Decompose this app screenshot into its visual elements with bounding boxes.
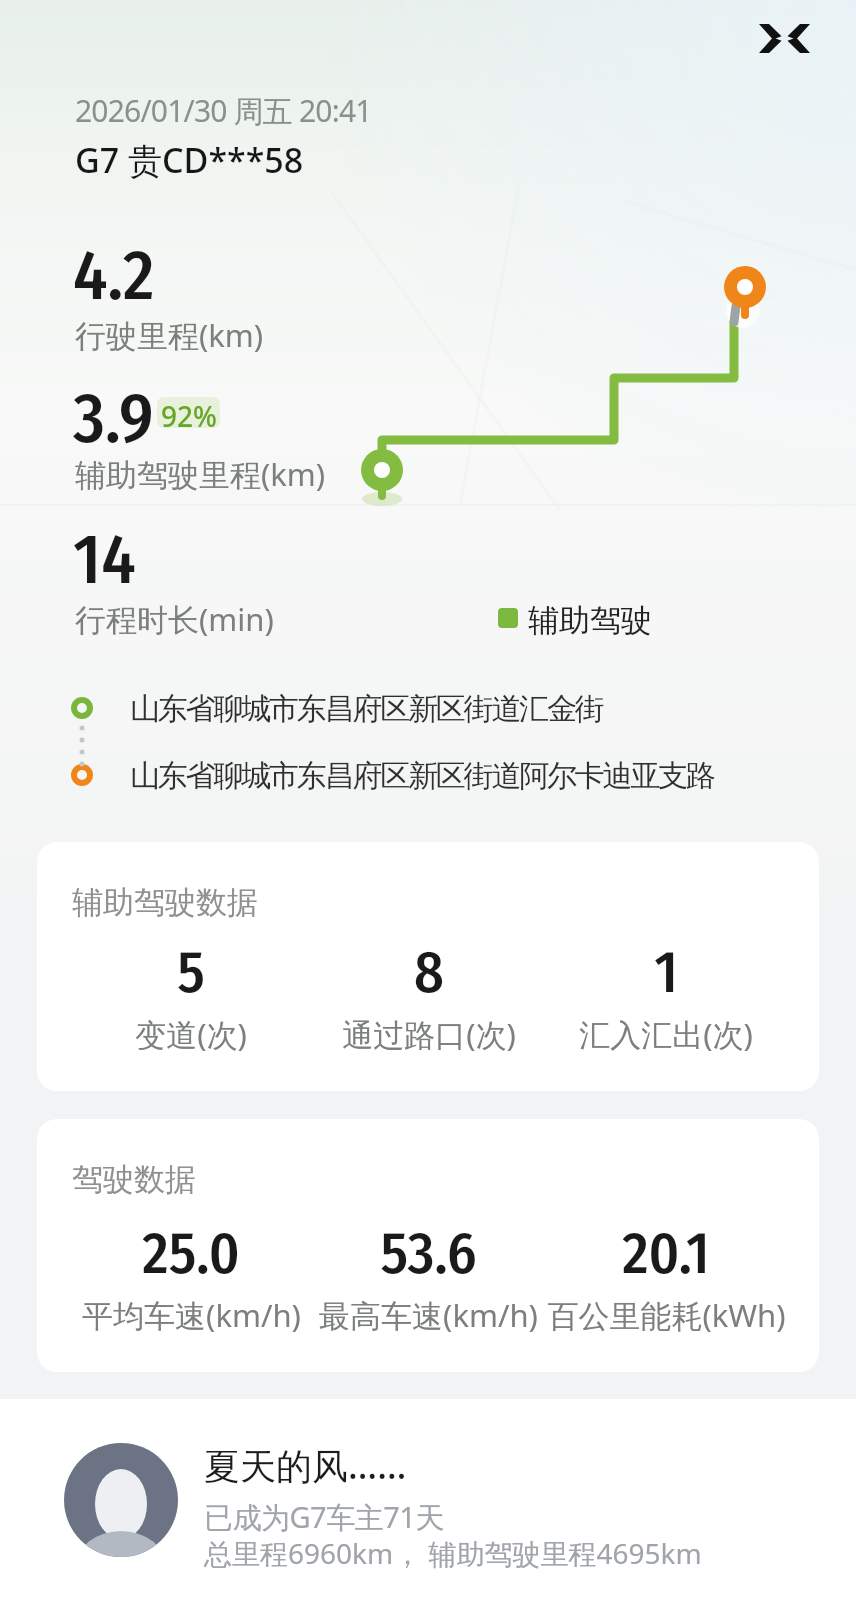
staticText: 百公里能耗(kWh) bbox=[547, 1294, 784, 1336]
staticText: 14 bbox=[73, 518, 136, 601]
staticText: 山东省聊城市东昌府区新区街道阿尔卡迪亚支路 bbox=[130, 757, 714, 795]
staticText: 最高车速(km/h) bbox=[319, 1294, 538, 1336]
staticText: 驾驶数据 bbox=[72, 1160, 196, 1199]
staticText: 25.0 bbox=[142, 1219, 240, 1289]
staticText: 行驶里程(km) bbox=[75, 314, 264, 356]
staticText: 辅助驾驶数据 bbox=[72, 883, 258, 922]
staticText: 辅助驾驶 bbox=[528, 601, 652, 640]
staticText: 2026/01/30 周五 20:41 bbox=[75, 90, 372, 131]
staticText: 山东省聊城市东昌府区新区街道汇金街 bbox=[130, 690, 603, 728]
button[interactable]: 驾驶数据 bbox=[37, 1119, 819, 1372]
staticText: 4.2 bbox=[73, 234, 155, 317]
staticText: 已成为G7车主71天 bbox=[204, 1497, 444, 1537]
staticText: 夏天的风…… bbox=[204, 1441, 407, 1490]
button[interactable]: 夏天的风…… bbox=[0, 1399, 856, 1614]
staticText: 平均车速(km/h) bbox=[82, 1294, 301, 1336]
staticText: 8 bbox=[414, 938, 444, 1008]
staticText: 通过路口(次) bbox=[342, 1013, 516, 1055]
staticText: 行程时长(min) bbox=[75, 598, 274, 640]
staticText: G7 贵CD***58 bbox=[75, 137, 304, 183]
staticText: 53.6 bbox=[380, 1219, 477, 1289]
staticText: 变道(次) bbox=[135, 1013, 247, 1055]
button[interactable]: 辅助驾驶数据 bbox=[37, 842, 819, 1091]
staticText: 1 bbox=[654, 938, 678, 1008]
staticText: 辅助驾驶里程(km) bbox=[75, 453, 326, 495]
staticText: 5 bbox=[177, 938, 205, 1008]
staticText: 总里程6960km， 辅助驾驶里程4695km bbox=[204, 1534, 702, 1572]
staticText: 汇入汇出(次) bbox=[579, 1013, 753, 1055]
staticText: 3.9 bbox=[73, 377, 154, 460]
staticText: 92% bbox=[161, 397, 217, 428]
staticText: 20.1 bbox=[622, 1219, 710, 1289]
button[interactable] bbox=[759, 24, 810, 53]
